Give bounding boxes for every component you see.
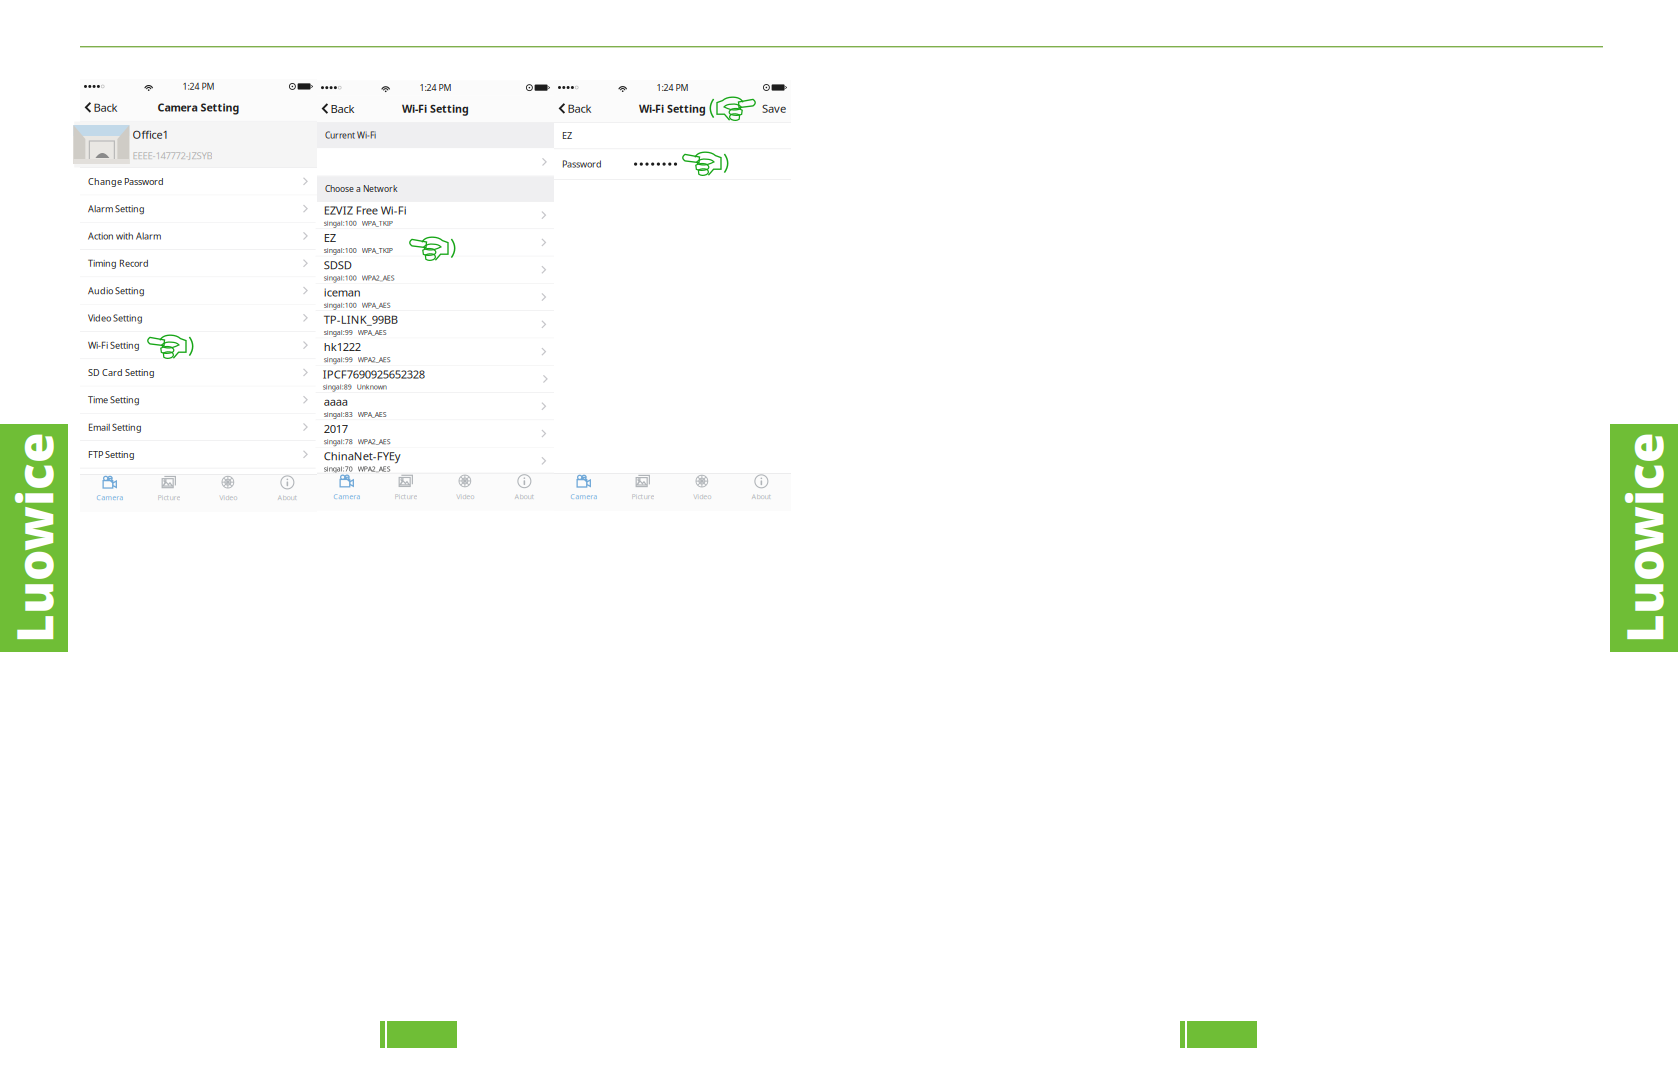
staticText: Office1	[132, 127, 168, 142]
staticText: Video Setting	[88, 312, 143, 324]
staticText: 1:24 PM	[656, 81, 688, 93]
staticText: Camera	[333, 491, 360, 501]
staticText: About	[514, 491, 534, 501]
staticText: Alarm Setting	[88, 203, 145, 215]
button[interactable]: Audio Setting	[80, 277, 317, 304]
staticText: Camera Setting	[157, 100, 239, 115]
staticText: singal:99	[324, 355, 353, 364]
staticText: Current Wi-Fi	[325, 129, 376, 141]
button[interactable]: Wi-Fi Setting	[80, 332, 317, 359]
button[interactable]: EZVIZ Free Wi-Fi	[316, 202, 555, 229]
staticText: singal:89	[323, 382, 352, 392]
staticText: EZ	[324, 230, 336, 245]
staticText: Action with Alarm	[88, 230, 161, 242]
button[interactable]: Camera	[317, 472, 376, 512]
staticText: 1:24 PM	[182, 80, 214, 92]
staticText: Unknown	[357, 382, 387, 392]
staticText: ChinaNet-FYEy	[324, 448, 401, 464]
staticText: WPA2_AES	[358, 355, 391, 364]
staticText: WPA2_AES	[358, 464, 391, 473]
button[interactable]: aaaa	[316, 393, 555, 420]
button[interactable]: Timing Record	[80, 250, 317, 277]
staticText: Luowice	[0, 504, 139, 572]
staticText: 1:24 PM	[419, 82, 451, 94]
button[interactable]: SDSD	[316, 256, 555, 284]
staticText: About	[277, 493, 297, 502]
staticText: 2017	[324, 421, 348, 436]
button[interactable]: Picture	[613, 472, 672, 512]
staticText: singal:100	[324, 300, 357, 310]
button[interactable]: About	[732, 472, 791, 512]
staticText: Time Setting	[88, 394, 140, 406]
button[interactable]: Video Setting	[80, 304, 317, 332]
staticText: aaaa	[324, 394, 348, 409]
staticText: iceman	[324, 284, 361, 300]
staticText: Video	[219, 493, 237, 502]
button[interactable]: Camera	[554, 472, 613, 512]
staticText: singal:78	[324, 437, 353, 446]
button[interactable]: ChinaNet-FYEy	[316, 448, 555, 475]
staticText: Audio Setting	[88, 284, 145, 297]
staticText: Wi-Fi Setting	[402, 101, 469, 116]
staticText: SDSD	[324, 257, 352, 272]
staticText: singal:100	[324, 218, 357, 228]
button[interactable]: FTP Setting	[80, 441, 317, 468]
button[interactable]: Camera	[80, 473, 139, 513]
staticText: singal:99	[324, 328, 353, 337]
staticText: Back	[93, 100, 117, 115]
button[interactable]: Back	[317, 98, 354, 119]
staticText: Picture	[157, 493, 180, 502]
staticText: singal:70	[324, 464, 353, 473]
staticText: TP-LINK_99BB	[324, 312, 398, 327]
staticText: Video	[693, 492, 711, 501]
staticText: Wi-Fi Setting	[639, 101, 706, 116]
button[interactable]: TP-LINK_99BB	[316, 311, 555, 338]
staticText: WPA_TKIP	[362, 246, 393, 255]
button[interactable]: Back	[554, 98, 591, 119]
button[interactable]: Video	[198, 473, 258, 513]
button[interactable]: Video	[672, 472, 732, 512]
button[interactable]: 2017	[316, 420, 555, 447]
button[interactable]: About	[258, 473, 317, 513]
button[interactable]: SD Card Setting	[80, 359, 317, 386]
staticText: singal:83	[324, 409, 353, 419]
staticText: singal:100	[324, 273, 357, 282]
staticText: WPA_AES	[358, 409, 387, 419]
staticText: Video	[456, 491, 474, 501]
button[interactable]: Picture	[376, 472, 435, 512]
staticText: Choose a Network	[325, 183, 398, 195]
button[interactable]: IPCF7690925652328	[315, 366, 556, 393]
staticText: Camera	[570, 492, 597, 501]
button[interactable]: Action with Alarm	[80, 223, 317, 250]
staticText: Password	[562, 158, 602, 170]
button[interactable]: hk1222	[316, 338, 555, 366]
staticText: hk1222	[324, 339, 361, 354]
button[interactable]: EZ	[316, 229, 555, 256]
staticText: EZVIZ Free Wi-Fi	[324, 203, 407, 218]
staticText: SD Card Setting	[88, 366, 155, 379]
staticText: Save	[762, 101, 786, 116]
button[interactable]: Email Setting	[80, 414, 317, 441]
staticText: Back	[330, 101, 354, 116]
staticText: EEEE-147772-JZSYB	[132, 149, 212, 162]
staticText: WPA_AES	[362, 300, 391, 310]
staticText: Back	[567, 101, 591, 116]
button[interactable]: Back	[80, 97, 117, 118]
button[interactable]: Save	[762, 98, 791, 119]
staticText: WPA2_AES	[358, 437, 391, 446]
button[interactable]: About	[495, 472, 554, 512]
button[interactable]: Alarm Setting	[80, 195, 317, 223]
staticText: Wi-Fi Setting	[88, 339, 140, 351]
button[interactable]: Video	[435, 472, 495, 512]
button[interactable]: iceman	[316, 284, 555, 311]
button[interactable]: Time Setting	[80, 386, 317, 414]
staticText: About	[751, 492, 771, 501]
button[interactable]: Change Password	[80, 168, 317, 195]
button[interactable]: Picture	[139, 473, 198, 513]
staticText: IPCF7690925652328	[323, 366, 425, 382]
staticText: Change Password	[88, 175, 164, 188]
staticText: WPA_TKIP	[362, 218, 393, 228]
staticText: Picture	[394, 491, 417, 501]
staticText: Timing Record	[88, 257, 149, 269]
